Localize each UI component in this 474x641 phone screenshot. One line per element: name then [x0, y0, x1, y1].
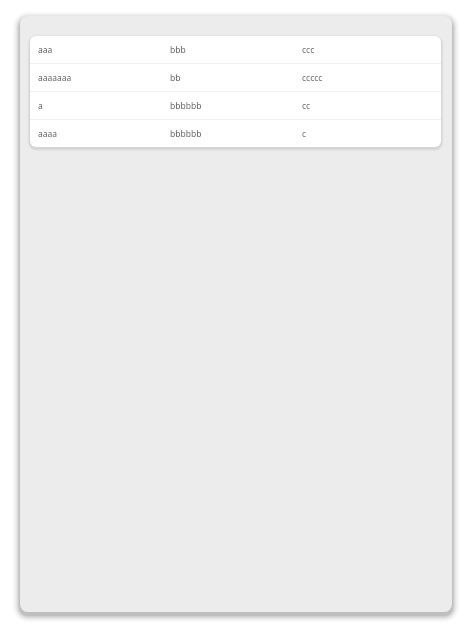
- staticText: cc: [302, 100, 311, 112]
- staticText: bb: [170, 72, 181, 84]
- staticText: bbb: [170, 44, 186, 56]
- staticText: aaaaaaa: [38, 72, 72, 84]
- staticText: c: [302, 128, 307, 140]
- staticText: bbbbbb: [170, 128, 202, 140]
- staticText: aaaa: [38, 128, 58, 140]
- staticText: ccccc: [302, 72, 323, 84]
- staticText: bbbbbb: [170, 100, 202, 112]
- staticText: a: [38, 100, 43, 112]
- staticText: ccc: [302, 44, 315, 56]
- staticText: aaa: [38, 44, 53, 56]
- button[interactable]: aaa: [30, 36, 441, 63]
- button[interactable]: a: [30, 92, 441, 119]
- button[interactable]: aaaa: [30, 120, 441, 147]
- button[interactable]: aaaaaaa: [30, 64, 441, 91]
